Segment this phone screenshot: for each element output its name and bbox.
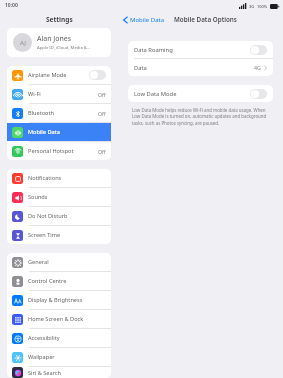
- staticText: Airplane Mode: [28, 71, 67, 79]
- button[interactable]: Wallpaper: [7, 348, 111, 366]
- button[interactable]: Notifications: [7, 169, 111, 187]
- button[interactable]: Mobile Data: [122, 16, 166, 24]
- staticText: Notifications: [28, 174, 62, 182]
- button[interactable]: Data Roaming: [128, 41, 273, 58]
- button[interactable]: Low Data Mode: [128, 85, 273, 102]
- button[interactable]: Control Centre: [7, 272, 111, 290]
- button[interactable]: Personal Hotspot: [7, 142, 111, 160]
- staticText: Low Data Mode: [134, 90, 177, 98]
- staticText: Bluetooth: [28, 109, 54, 117]
- button[interactable]: Screen Time: [7, 226, 111, 244]
- staticText: Alan Jones: [37, 34, 72, 44]
- button[interactable]: Bluetooth: [7, 104, 111, 122]
- button[interactable]: Home Screen & Dock: [7, 310, 111, 328]
- button[interactable]: Do Not Disturb: [7, 207, 111, 225]
- staticText: Display & Brightness: [28, 296, 83, 304]
- button[interactable]: Accessibility: [7, 329, 111, 347]
- staticText: Wallpaper: [28, 353, 55, 361]
- button[interactable]: Toggle: [250, 89, 267, 99]
- button[interactable]: Sounds: [7, 188, 111, 206]
- button[interactable]: Siri & Search: [7, 367, 111, 378]
- staticText: Mobile Data: [130, 16, 165, 24]
- staticText: AJ: [20, 39, 26, 47]
- staticText: Do Not Disturb: [28, 212, 68, 220]
- staticText: General: [28, 258, 49, 266]
- staticText: Screen Time: [28, 231, 61, 239]
- button[interactable]: Data: [128, 59, 273, 76]
- staticText: Off: [98, 91, 106, 98]
- staticText: 3G: [249, 4, 255, 9]
- staticText: Off: [98, 110, 106, 117]
- button[interactable]: Mobile Data: [7, 123, 111, 141]
- staticText: Sounds: [28, 193, 48, 201]
- staticText: Wi-Fi: [28, 90, 41, 98]
- button[interactable]: Toggle: [250, 45, 267, 55]
- staticText: Mobile Data Options: [174, 15, 237, 24]
- staticText: Data: [134, 64, 147, 72]
- staticText: 10:00: [5, 2, 18, 9]
- staticText: Data Roaming: [134, 46, 173, 54]
- button[interactable]: Display & Brightness: [7, 291, 111, 309]
- staticText: Off: [98, 148, 106, 155]
- button[interactable]: Toggle: [89, 70, 106, 80]
- staticText: Mobile Data: [28, 128, 60, 136]
- button[interactable]: General: [7, 253, 111, 271]
- staticText: Accessibility: [28, 334, 60, 342]
- staticText: Control Centre: [28, 277, 67, 285]
- staticText: Low Data Mode helps reduce Wi-Fi and mob…: [132, 107, 269, 127]
- button[interactable]: Airplane Mode: [7, 66, 111, 84]
- button[interactable]: Wi-Fi: [7, 85, 111, 103]
- staticText: 4G: [254, 64, 261, 71]
- staticText: Home Screen & Dock: [28, 315, 84, 323]
- button[interactable]: AJ: [7, 28, 111, 57]
- staticText: Settings: [46, 15, 73, 24]
- staticText: Siri & Search: [28, 369, 61, 377]
- staticText: Apple ID, iCloud, Media &...: [37, 45, 91, 51]
- staticText: Personal Hotspot: [28, 147, 74, 155]
- staticText: 100%: [257, 4, 268, 9]
